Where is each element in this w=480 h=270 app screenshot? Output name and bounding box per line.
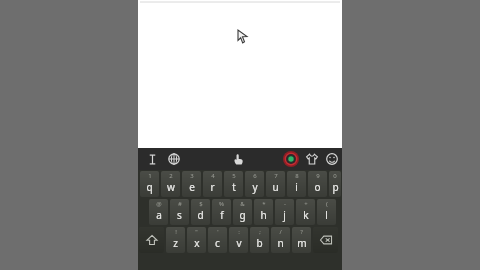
- staticText: 3: [190, 172, 194, 180]
- staticText: l: [325, 208, 328, 222]
- button[interactable]: 9: [308, 171, 327, 197]
- staticText: p: [332, 180, 339, 194]
- staticText: c: [215, 236, 220, 250]
- button[interactable]: &: [233, 199, 252, 225]
- staticText: @: [156, 200, 162, 208]
- button[interactable]: 6: [245, 171, 264, 197]
- button[interactable]: ?: [292, 227, 311, 253]
- button[interactable]: ;: [250, 227, 269, 253]
- button[interactable]: *: [254, 199, 273, 225]
- button[interactable]: %: [212, 199, 231, 225]
- button[interactable]: 2: [161, 171, 180, 197]
- staticText: x: [194, 236, 200, 250]
- staticText: :: [238, 228, 240, 236]
- staticText: z: [173, 236, 178, 250]
- button[interactable]: :: [229, 227, 248, 253]
- staticText: *: [262, 200, 266, 208]
- staticText: #: [178, 200, 182, 208]
- staticText: ": [195, 228, 198, 236]
- staticText: e: [189, 180, 195, 194]
- button[interactable]: 8: [287, 171, 306, 197]
- staticText: y: [252, 180, 258, 194]
- button[interactable]: !: [166, 227, 185, 253]
- staticText: ': [217, 228, 219, 236]
- button[interactable]: 7: [266, 171, 285, 197]
- staticText: k: [303, 208, 309, 222]
- staticText: -: [284, 200, 286, 208]
- staticText: /: [279, 228, 282, 236]
- staticText: h: [260, 208, 267, 222]
- staticText: 5: [232, 172, 236, 180]
- staticText: n: [277, 236, 284, 250]
- button[interactable]: Backspace: [313, 227, 338, 253]
- staticText: &: [240, 200, 245, 208]
- button[interactable]: 4: [203, 171, 222, 197]
- staticText: 7: [274, 172, 278, 180]
- staticText: 6: [253, 172, 257, 180]
- button[interactable]: #: [170, 199, 189, 225]
- staticText: 4: [211, 172, 215, 180]
- staticText: 9: [316, 172, 320, 180]
- staticText: a: [156, 208, 162, 222]
- staticText: 1: [148, 172, 152, 180]
- button[interactable]: Language: [164, 148, 184, 170]
- staticText: m: [297, 236, 307, 250]
- staticText: !: [175, 228, 177, 236]
- staticText: q: [146, 180, 153, 194]
- staticText: b: [256, 236, 263, 250]
- staticText: g: [239, 208, 246, 222]
- staticText: i: [295, 180, 298, 194]
- staticText: ;: [259, 228, 261, 236]
- staticText: (: [326, 200, 328, 208]
- button[interactable]: Text cursor: [142, 148, 162, 170]
- button[interactable]: ': [208, 227, 227, 253]
- staticText: $: [199, 200, 203, 208]
- staticText: o: [314, 180, 321, 194]
- button[interactable]: 3: [182, 171, 201, 197]
- staticText: w: [167, 180, 175, 194]
- button[interactable]: /: [271, 227, 290, 253]
- staticText: s: [177, 208, 182, 222]
- staticText: j: [283, 208, 286, 222]
- button[interactable]: Emoji: [322, 148, 342, 170]
- staticText: f: [220, 208, 224, 222]
- button[interactable]: +: [296, 199, 315, 225]
- button[interactable]: Handwriting: [228, 148, 248, 170]
- staticText: v: [236, 236, 242, 250]
- staticText: u: [272, 180, 279, 194]
- staticText: t: [232, 180, 236, 194]
- button[interactable]: ": [187, 227, 206, 253]
- staticText: 2: [169, 172, 173, 180]
- staticText: %: [219, 200, 224, 208]
- button[interactable]: (: [317, 199, 336, 225]
- button[interactable]: Stickers: [302, 148, 322, 170]
- staticText: 0: [333, 172, 337, 180]
- button[interactable]: -: [275, 199, 294, 225]
- button[interactable]: Record: [280, 148, 302, 170]
- button[interactable]: 0: [329, 171, 341, 197]
- button[interactable]: 5: [224, 171, 243, 197]
- button[interactable]: Shift: [139, 227, 164, 253]
- button[interactable]: @: [149, 199, 168, 225]
- button[interactable]: 1: [140, 171, 159, 197]
- staticText: 8: [295, 172, 299, 180]
- staticText: d: [197, 208, 204, 222]
- staticText: ?: [300, 228, 303, 236]
- staticText: +: [304, 200, 308, 208]
- staticText: r: [210, 180, 215, 194]
- button[interactable]: $: [191, 199, 210, 225]
